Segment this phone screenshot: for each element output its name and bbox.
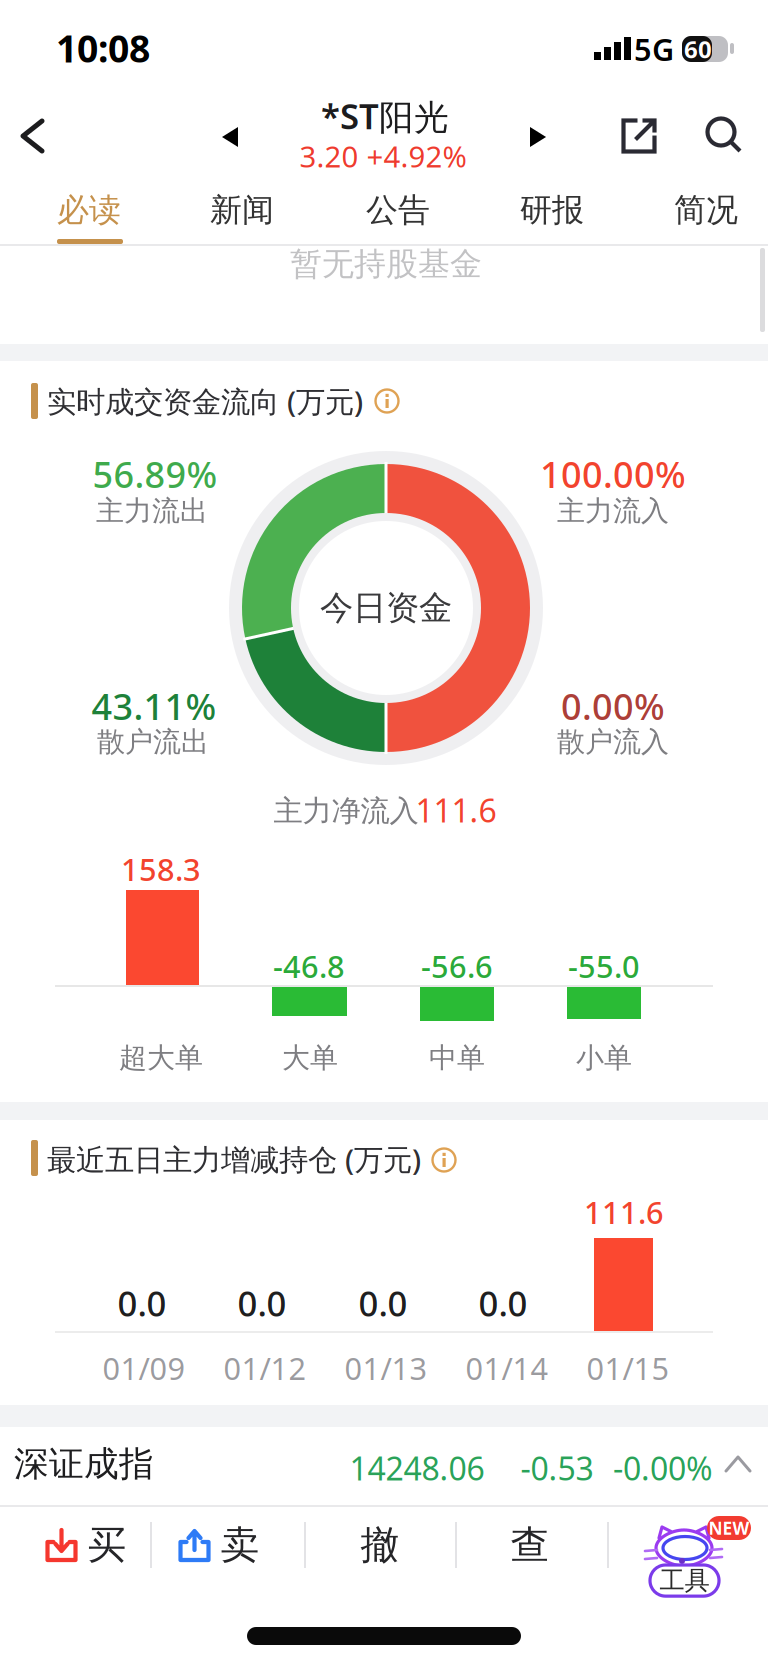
button[interactable]: 研报: [507, 185, 597, 235]
staticText: 散户流出: [97, 725, 209, 759]
button[interactable]: Info: [431, 1147, 457, 1173]
button[interactable]: 工具: [641, 1509, 729, 1585]
staticText: 0.0: [117, 1280, 166, 1326]
staticText: 01/12: [223, 1348, 306, 1388]
staticText: 100.00%: [540, 450, 686, 498]
button[interactable]: 撤: [325, 1512, 435, 1578]
staticText: 主力净流入: [273, 793, 418, 829]
staticText: -46.8: [273, 946, 345, 986]
button[interactable]: 必读: [44, 187, 134, 245]
staticText: 主力流出: [96, 494, 208, 528]
button[interactable]: Info: [374, 388, 400, 414]
staticText: 散户流入: [557, 725, 669, 759]
button[interactable]: 公告: [353, 185, 443, 235]
staticText: 今日资金: [320, 587, 452, 628]
staticText: 最近五日主力增减持仓 (万元): [47, 1139, 421, 1178]
staticText: 中单: [429, 1041, 485, 1075]
staticText: 0.0: [478, 1280, 527, 1326]
button[interactable]: 深证成指: [0, 1427, 768, 1505]
staticText: 小单: [576, 1041, 632, 1075]
staticText: 必读: [57, 190, 121, 230]
button[interactable]: 卖: [159, 1512, 279, 1578]
staticText: 3.20 +4.92%: [299, 136, 466, 175]
staticText: 公告: [366, 190, 430, 230]
staticText: NEW: [708, 1516, 749, 1539]
button[interactable]: 买: [26, 1512, 146, 1578]
staticText: 深证成指: [14, 1443, 154, 1485]
button[interactable]: Search: [706, 117, 742, 153]
button[interactable]: 简况: [661, 185, 751, 235]
staticText: 5G: [634, 29, 674, 69]
staticText: 01/13: [344, 1348, 427, 1388]
staticText: -56.6: [421, 946, 493, 986]
staticText: 大单: [282, 1041, 338, 1075]
button[interactable]: Previous stock: [221, 126, 239, 148]
staticText: 超大单: [119, 1041, 203, 1075]
staticText: 01/09: [102, 1348, 185, 1388]
staticText: 01/14: [465, 1348, 548, 1388]
button[interactable]: Next stock: [529, 126, 547, 148]
button[interactable]: Share: [621, 118, 656, 153]
staticText: 主力流入: [557, 494, 669, 528]
staticText: 0.0: [358, 1280, 407, 1326]
staticText: 卖: [220, 1521, 259, 1569]
staticText: -0.53: [520, 1447, 593, 1489]
staticText: 暂无持股基金: [290, 244, 482, 284]
button[interactable]: 查: [475, 1512, 585, 1578]
staticText: -0.00%: [613, 1447, 713, 1489]
staticText: 158.3: [121, 849, 201, 889]
staticText: 14248.06: [349, 1447, 484, 1489]
staticText: 43.11%: [91, 682, 216, 730]
staticText: 111.6: [415, 789, 496, 831]
staticText: 60: [684, 33, 712, 65]
staticText: 撤: [360, 1521, 399, 1569]
staticText: 买: [87, 1521, 126, 1569]
button[interactable]: 新闻: [197, 185, 287, 235]
staticText: *ST阳光: [321, 93, 449, 139]
staticText: 10:08: [56, 23, 150, 73]
staticText: -55.0: [568, 946, 640, 986]
staticText: 简况: [674, 190, 738, 230]
staticText: 新闻: [210, 190, 274, 230]
staticText: 实时成交资金流向 (万元): [47, 381, 363, 420]
button[interactable]: Back: [21, 119, 45, 153]
staticText: 56.89%: [92, 450, 217, 498]
staticText: 01/15: [586, 1348, 669, 1388]
staticText: 0.0: [237, 1280, 286, 1326]
staticText: 0.00%: [561, 682, 665, 730]
staticText: 工具: [659, 1565, 709, 1596]
staticText: 研报: [520, 190, 584, 230]
staticText: 查: [510, 1521, 549, 1569]
staticText: 111.6: [584, 1192, 664, 1232]
